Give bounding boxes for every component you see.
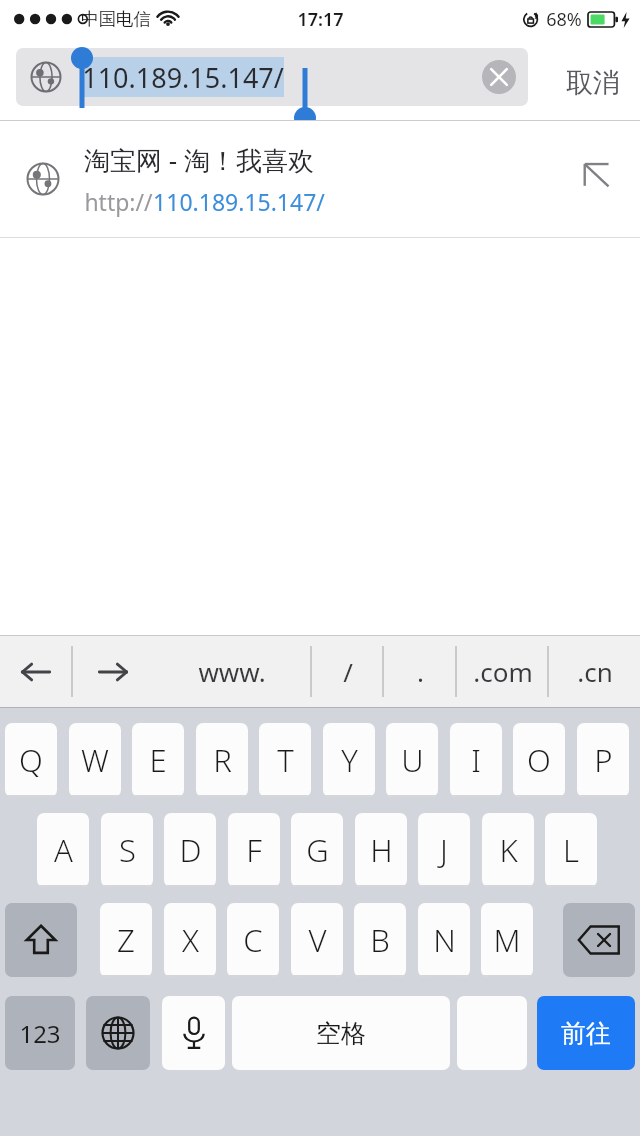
staticText: .com	[473, 654, 533, 689]
button[interactable]: H	[355, 813, 407, 887]
staticText: I	[471, 739, 481, 781]
staticText: 取消	[566, 66, 620, 100]
button[interactable]: Y	[323, 723, 375, 797]
staticText: K	[499, 829, 518, 871]
staticText: P	[594, 739, 613, 781]
button[interactable]: 淘宝网 - 淘！我喜欢	[0, 121, 640, 237]
staticText: B	[370, 919, 390, 961]
staticText: L	[563, 829, 579, 871]
button[interactable]: Q	[5, 723, 57, 797]
staticText: .cn	[577, 654, 613, 689]
staticText: G	[306, 829, 329, 871]
button[interactable]: www.	[153, 636, 311, 707]
staticText: 110.189.15.147/	[82, 59, 284, 96]
staticText: 123	[19, 1017, 61, 1050]
button[interactable]: 110.189.15.147/	[16, 48, 528, 106]
staticText: F	[246, 829, 262, 871]
staticText: A	[54, 829, 73, 871]
staticText: J	[440, 829, 448, 871]
button[interactable]: Back	[0, 636, 72, 707]
button[interactable]: W	[69, 723, 121, 797]
button[interactable]: Switch keyboard	[86, 996, 150, 1070]
staticText: R	[213, 739, 232, 781]
button[interactable]: Numbers	[5, 996, 75, 1070]
button[interactable]: Shift	[5, 903, 77, 977]
button[interactable]: .	[384, 636, 456, 707]
staticText: .	[417, 654, 424, 689]
button[interactable]: R	[196, 723, 248, 797]
button[interactable]: .cn	[549, 636, 640, 707]
staticText: www.	[198, 654, 266, 689]
button[interactable]: Emoji	[457, 996, 527, 1070]
button[interactable]: J	[418, 813, 470, 887]
button[interactable]: Forward	[73, 636, 153, 707]
staticText: X	[182, 919, 199, 961]
staticText: W	[81, 739, 109, 781]
button[interactable]: T	[259, 723, 311, 797]
button[interactable]: A	[37, 813, 89, 887]
button[interactable]: Dictation	[162, 996, 225, 1070]
staticText: 68%	[546, 7, 582, 32]
staticText: Z	[117, 919, 135, 961]
button[interactable]: D	[164, 813, 216, 887]
staticText: N	[433, 919, 456, 961]
button[interactable]: /	[312, 636, 383, 707]
button[interactable]: 取消	[560, 58, 626, 108]
button[interactable]: O	[513, 723, 565, 797]
button[interactable]: S	[101, 813, 153, 887]
staticText: U	[401, 739, 424, 781]
staticText: 17:17	[297, 7, 344, 32]
button[interactable]: I	[450, 723, 502, 797]
staticText: O	[527, 739, 551, 781]
staticText: M	[493, 919, 521, 961]
button[interactable]: F	[228, 813, 280, 887]
other: Fill URL	[582, 162, 616, 196]
staticText: S	[119, 829, 136, 871]
staticText: C	[243, 919, 263, 961]
staticText: V	[308, 919, 327, 961]
staticText: http://	[84, 186, 153, 217]
staticText: H	[370, 829, 393, 871]
button[interactable]: B	[354, 903, 406, 977]
staticText: 淘宝网 - 淘！我喜欢	[84, 142, 314, 178]
staticText: D	[179, 829, 202, 871]
staticText: Y	[341, 739, 358, 781]
staticText: 空格	[316, 1018, 366, 1049]
button[interactable]: K	[482, 813, 534, 887]
button[interactable]: Clear text	[482, 60, 516, 94]
button[interactable]: G	[291, 813, 343, 887]
button[interactable]: E	[132, 723, 184, 797]
button[interactable]: .com	[457, 636, 548, 707]
button[interactable]: P	[577, 723, 629, 797]
staticText: 中国电信	[81, 8, 151, 30]
button[interactable]: V	[291, 903, 343, 977]
button[interactable]: X	[164, 903, 216, 977]
button[interactable]: N	[418, 903, 470, 977]
staticText: 110.189.15.147/	[153, 186, 325, 217]
button[interactable]: L	[545, 813, 597, 887]
staticText: 前往	[561, 1018, 611, 1049]
staticText: Q	[19, 739, 43, 781]
staticText: T	[277, 739, 294, 781]
button[interactable]: Delete	[563, 903, 635, 977]
button[interactable]: Space	[232, 996, 450, 1070]
staticText: /	[343, 654, 353, 689]
button[interactable]: C	[227, 903, 279, 977]
button[interactable]: Go	[537, 996, 635, 1070]
button[interactable]: M	[481, 903, 533, 977]
staticText: E	[149, 739, 167, 781]
button[interactable]: U	[386, 723, 438, 797]
button[interactable]: Z	[100, 903, 152, 977]
